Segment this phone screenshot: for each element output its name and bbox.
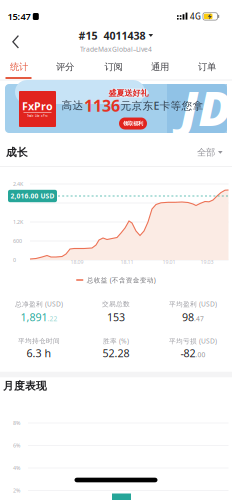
staticText: 成长	[6, 146, 28, 159]
staticText: 4%	[13, 464, 20, 472]
staticText: 高达	[61, 99, 83, 112]
staticText: 52.28	[102, 346, 129, 360]
staticText: 平均持仓时间	[18, 337, 60, 345]
staticText: 总净盈利 (USD)	[15, 300, 63, 308]
staticText: 6%	[13, 442, 20, 449]
staticText: TradeMaxGlobal–Live4	[80, 45, 152, 54]
staticText: 领取福利	[123, 120, 143, 127]
staticText: 6.3 h	[26, 346, 51, 360]
button[interactable]: 统计	[0, 57, 39, 77]
staticText: 600	[13, 237, 22, 245]
staticText: 元京东E卡等您拿	[120, 98, 203, 113]
staticText: 18.11	[120, 258, 133, 266]
staticText: -82	[180, 346, 195, 360]
staticText: 2%	[13, 487, 20, 494]
staticText: 8%	[13, 419, 20, 427]
staticText: 18.09	[70, 258, 83, 266]
staticText: 统计	[10, 61, 28, 73]
staticText: 15:47	[7, 10, 30, 23]
staticText: .00	[195, 350, 205, 359]
staticText: 0	[13, 256, 16, 264]
button[interactable]: 订单	[187, 57, 227, 77]
staticText: 订单	[198, 61, 216, 73]
button[interactable]: 通用	[140, 57, 180, 77]
staticText: 胜率 (%)	[103, 337, 129, 345]
button[interactable]: #15 4011438	[78, 28, 153, 53]
staticText: JD	[180, 76, 231, 139]
staticText: 平均盈利 (USD)	[169, 300, 217, 308]
button[interactable]: JD	[5, 84, 227, 133]
button[interactable]: Back	[12, 35, 19, 49]
staticText: 98	[182, 310, 194, 324]
staticText: Trade Like a Pro	[27, 114, 48, 118]
button[interactable]: 订阅	[93, 57, 133, 77]
staticText: 平均亏损 (USD)	[169, 337, 217, 345]
staticText: 全部	[197, 147, 215, 158]
staticText: 1.2K	[13, 218, 23, 226]
staticText: 19.01	[162, 258, 175, 266]
staticText: 订阅	[104, 61, 122, 73]
staticText: .22	[47, 314, 57, 323]
staticText: FxPro	[22, 99, 53, 113]
staticText: 4G	[190, 11, 201, 22]
staticText: 2.4K	[13, 180, 23, 188]
staticText: 1136	[84, 95, 120, 116]
staticText: 153	[107, 310, 125, 324]
staticText: 总收益 (不含资金变动)	[87, 276, 156, 284]
staticText: 2,016.00 USD	[10, 192, 54, 200]
staticText: 交易总数	[102, 300, 130, 308]
staticText: 19.03	[200, 258, 213, 266]
staticText: 通用	[151, 61, 169, 73]
staticText: #15 4011438	[78, 28, 145, 43]
staticText: 月度表现	[3, 379, 47, 392]
staticText: 1,891	[20, 310, 47, 324]
staticText: 盛夏送好礼	[108, 88, 148, 98]
staticText: 评分	[56, 61, 74, 73]
button[interactable]: 全部	[197, 147, 223, 158]
staticText: .47	[194, 314, 204, 323]
button[interactable]: 评分	[45, 57, 85, 77]
